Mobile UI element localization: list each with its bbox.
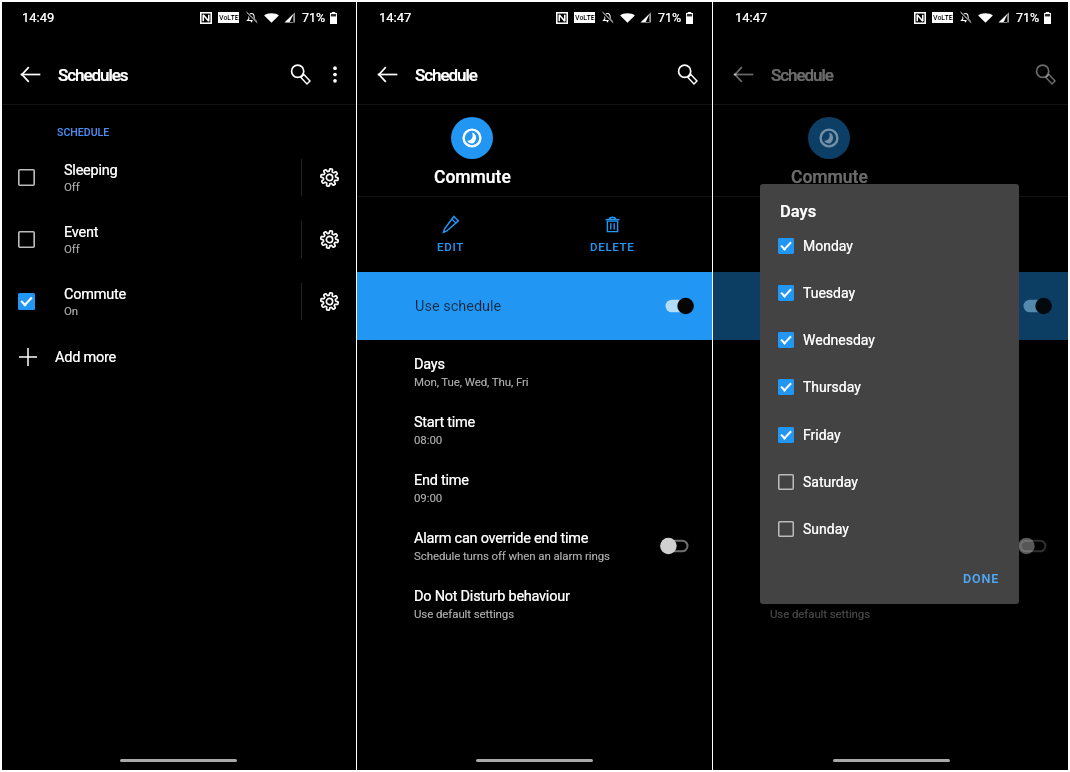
button[interactable]: Thursday (760, 363, 1019, 410)
button[interactable]: Search (1023, 52, 1067, 96)
staticText: 08:00 (414, 433, 443, 446)
staticText: DELETE (590, 240, 635, 253)
button[interactable]: Back (717, 48, 769, 100)
button[interactable]: Back (361, 48, 413, 100)
staticText: Event (64, 224, 99, 241)
button[interactable]: Back (4, 48, 56, 100)
staticText: Wednesday (803, 332, 875, 348)
button[interactable]: Sleeping (0, 146, 356, 208)
staticText: Do Not Disturb behaviour (414, 588, 570, 605)
staticText: Alarm can override end time (414, 530, 589, 547)
button[interactable]: Event (0, 208, 356, 270)
staticText: Mon, Tue, Wed, Thu, Fri (414, 375, 529, 388)
staticText: Thursday (803, 379, 861, 395)
staticText: EDIT (793, 240, 820, 253)
button[interactable]: Search (278, 52, 322, 96)
button[interactable]: Use schedule (357, 272, 712, 340)
button[interactable]: DONE (944, 565, 1019, 592)
button[interactable]: Commute (0, 270, 356, 332)
staticText: 14:47 (379, 10, 412, 25)
button[interactable]: Search (665, 52, 709, 96)
staticText: 09:00 (414, 491, 443, 504)
staticText: Schedules (58, 65, 128, 85)
staticText: Schedule (415, 65, 477, 85)
button[interactable]: Start time (713, 401, 1070, 459)
staticText: Mon, Tue, Wed, Thu, Fri (770, 375, 885, 388)
staticText: On (64, 304, 79, 317)
button[interactable]: Alarm can override end time (713, 517, 1070, 575)
button[interactable]: Add more (0, 333, 356, 381)
staticText: SCHEDULE (57, 126, 110, 138)
staticText: 14:49 (22, 10, 55, 25)
staticText: Saturday (803, 474, 858, 490)
button[interactable]: Settings for Event (302, 208, 356, 270)
staticText: Use schedule (771, 298, 858, 315)
staticText: Use default settings (770, 607, 871, 620)
button[interactable]: Monday (760, 222, 1019, 269)
staticText: Schedule turns off when an alarm rings (414, 549, 610, 562)
button[interactable]: End time (713, 459, 1070, 517)
staticText: VoLTE (219, 14, 239, 22)
staticText: VoLTE (933, 14, 953, 22)
staticText: VoLTE (575, 14, 595, 22)
staticText: Start time (414, 414, 476, 431)
staticText: End time (770, 472, 825, 489)
staticText: Commute (64, 286, 126, 303)
staticText: Commute (434, 167, 511, 188)
staticText: 71% (1016, 10, 1040, 25)
staticText: Off (64, 180, 80, 193)
staticText: 71% (302, 10, 326, 25)
staticText: End time (414, 472, 469, 489)
button[interactable]: Friday (760, 411, 1019, 458)
staticText: 08:00 (770, 433, 799, 446)
button[interactable]: Saturday (760, 458, 1019, 505)
button[interactable]: Settings for Commute (302, 270, 356, 332)
button[interactable]: DELETE (531, 202, 694, 270)
staticText: Monday (803, 238, 853, 254)
button[interactable]: Settings for Sleeping (302, 146, 356, 208)
button[interactable]: EDIT (725, 202, 888, 270)
button[interactable]: Use schedule (713, 272, 1070, 340)
staticText: Tuesday (803, 285, 856, 301)
staticText: Use schedule (415, 298, 502, 315)
button[interactable]: Tuesday (760, 269, 1019, 316)
staticText: Friday (803, 427, 841, 443)
staticText: Alarm can override end time (770, 530, 945, 547)
button[interactable]: Sunday (760, 505, 1019, 552)
button[interactable]: Wednesday (760, 316, 1019, 363)
staticText: 71% (658, 10, 682, 25)
staticText: Sleeping (64, 162, 118, 179)
staticText: Sunday (803, 521, 849, 537)
button[interactable]: Do Not Disturb behaviour (357, 575, 712, 633)
staticText: Start time (770, 414, 832, 431)
button[interactable]: Days (713, 343, 1070, 401)
staticText: Use default settings (414, 607, 515, 620)
button[interactable]: DELETE (888, 202, 1052, 270)
staticText: Add more (55, 349, 116, 366)
staticText: Commute (791, 167, 868, 188)
button[interactable]: End time (357, 459, 712, 517)
staticText: Do Not Disturb behaviour (770, 588, 926, 605)
button[interactable]: Do Not Disturb behaviour (713, 575, 1070, 633)
staticText: 14:47 (735, 10, 768, 25)
staticText: Days (414, 356, 445, 373)
button[interactable]: EDIT (369, 202, 531, 270)
staticText: Off (64, 242, 80, 255)
button[interactable]: More options (318, 52, 352, 96)
button[interactable]: Days (357, 343, 712, 401)
staticText: Schedule (771, 65, 833, 85)
staticText: EDIT (437, 240, 464, 253)
button[interactable]: Start time (357, 401, 712, 459)
staticText: Days (780, 202, 817, 221)
button[interactable]: Alarm can override end time (357, 517, 712, 575)
staticText: DONE (963, 571, 1000, 586)
